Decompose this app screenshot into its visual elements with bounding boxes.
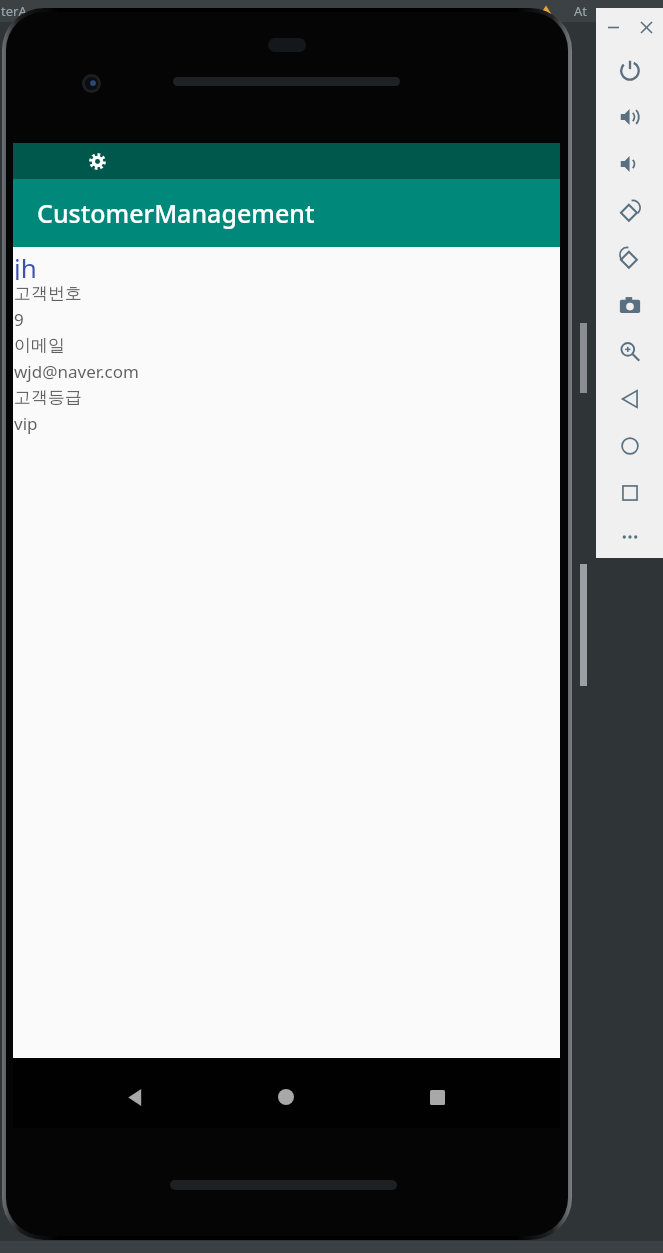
- button[interactable]: Volume down: [596, 140, 663, 187]
- button[interactable]: jh: [13, 250, 560, 280]
- button[interactable]: Back: [114, 1076, 156, 1118]
- button[interactable]: More: [596, 516, 663, 558]
- button[interactable]: CustomerManagement: [13, 179, 560, 247]
- button[interactable]: Close: [630, 8, 663, 46]
- staticText: 고객등급: [14, 387, 82, 408]
- button[interactable]: Volume up: [596, 93, 663, 140]
- button[interactable]: Overview: [596, 469, 663, 516]
- staticText: jh: [14, 250, 37, 280]
- staticText: 9: [14, 308, 24, 331]
- button[interactable]: vip: [13, 410, 560, 436]
- staticText: 고객번호: [14, 283, 82, 304]
- button[interactable]: Home: [596, 422, 663, 469]
- staticText: wjd@naver.com: [14, 360, 139, 383]
- button[interactable]: Zoom: [596, 328, 663, 375]
- button[interactable]: Power: [596, 46, 663, 93]
- button[interactable]: Screenshot: [596, 281, 663, 328]
- staticText: At: [574, 2, 588, 20]
- button[interactable]: 9: [13, 306, 560, 332]
- button[interactable]: Rotate right: [596, 234, 663, 281]
- button[interactable]: Recent apps: [416, 1076, 458, 1118]
- button[interactable]: Settings: [81, 145, 113, 177]
- button[interactable]: Home: [265, 1076, 307, 1118]
- button[interactable]: Minimize: [596, 8, 630, 46]
- staticText: CustomerManagement: [37, 196, 315, 230]
- button[interactable]: 고객등급: [13, 384, 560, 410]
- button[interactable]: 이메일: [13, 332, 560, 358]
- staticText: 이메일: [14, 335, 65, 356]
- staticText: vip: [14, 412, 38, 435]
- button[interactable]: Back: [596, 375, 663, 422]
- button[interactable]: wjd@naver.com: [13, 358, 560, 384]
- staticText: terA: [1, 2, 27, 20]
- button[interactable]: 고객번호: [13, 280, 560, 306]
- button[interactable]: Rotate left: [596, 187, 663, 234]
